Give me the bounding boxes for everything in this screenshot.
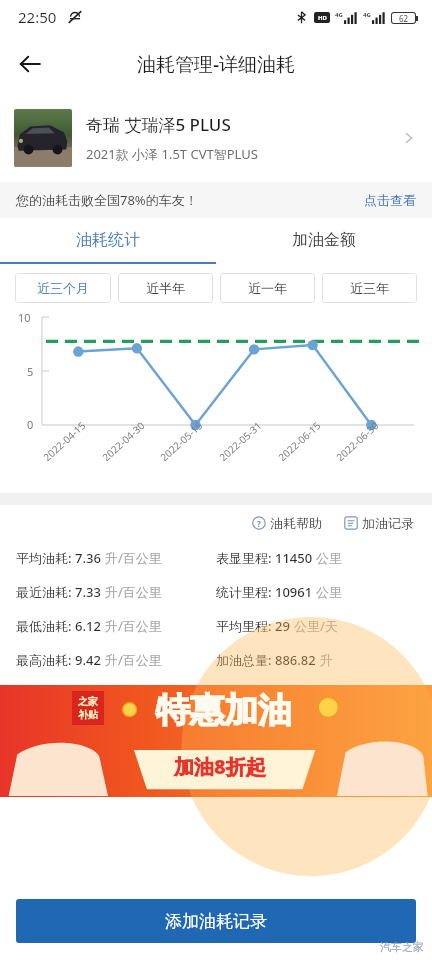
- staticText: 近三个月: [37, 280, 89, 296]
- staticText: 22:50: [18, 7, 57, 27]
- button[interactable]: Back: [8, 42, 52, 86]
- staticText: 加油总量:: [216, 651, 275, 669]
- staticText: 0: [27, 417, 34, 432]
- staticText: 4G: [335, 11, 343, 19]
- staticText: 公里/天: [294, 617, 338, 635]
- staticText: 最高油耗:: [16, 651, 75, 669]
- button[interactable]: 近半年: [118, 273, 213, 303]
- staticText: 加油记录: [362, 515, 414, 531]
- button[interactable]: 加油记录: [344, 515, 414, 531]
- staticText: 10: [18, 310, 31, 325]
- staticText: 2022-06-15: [275, 418, 324, 464]
- staticText: 油耗帮助: [270, 515, 322, 531]
- staticText: 62: [399, 13, 409, 23]
- staticText: 886.82: [275, 651, 320, 669]
- staticText: 升/百公里: [105, 583, 162, 601]
- staticText: 油耗统计: [76, 230, 140, 250]
- staticText: 2022-04-30: [99, 418, 148, 464]
- staticText: 之家: [78, 695, 98, 708]
- staticText: 最近油耗:: [16, 583, 75, 601]
- staticText: 统计里程:: [216, 583, 275, 601]
- staticText: 您的油耗击败全国78%的车友！: [16, 191, 198, 209]
- staticText: 5: [27, 364, 34, 379]
- button[interactable]: 奇瑞 艾瑞泽5 PLUS: [0, 94, 432, 182]
- staticText: 7.36: [75, 549, 105, 567]
- staticText: 添加油耗记录: [165, 911, 267, 932]
- button[interactable]: 特惠加油 广告: [0, 685, 432, 797]
- staticText: 2022-05-15: [157, 418, 206, 464]
- staticText: 油耗管理-详细油耗: [137, 51, 296, 77]
- staticText: 2022-04-15: [40, 418, 89, 464]
- staticText: 2022-06-30: [333, 418, 382, 464]
- button[interactable]: 油耗统计: [0, 218, 216, 262]
- staticText: 汽车之家: [380, 940, 424, 954]
- staticText: 表显里程:: [216, 549, 275, 567]
- staticText: 补贴: [78, 708, 98, 721]
- staticText: 最低油耗:: [16, 617, 75, 635]
- staticText: 升/百公里: [105, 617, 162, 635]
- staticText: 升/百公里: [105, 549, 162, 567]
- button[interactable]: 加油金额: [216, 218, 432, 262]
- staticText: 29: [275, 617, 294, 635]
- staticText: 平均油耗:: [16, 549, 75, 567]
- staticText: 2022-05-31: [216, 418, 265, 464]
- button[interactable]: ?: [252, 515, 322, 531]
- button[interactable]: 您的油耗击败全国78%的车友！: [0, 182, 432, 218]
- staticText: 加油8折起: [174, 753, 266, 780]
- staticText: 4G: [363, 11, 371, 19]
- staticText: 7.33: [75, 583, 105, 601]
- staticText: 近一年: [248, 280, 287, 296]
- staticText: 9.42: [75, 651, 105, 669]
- staticText: 2021款 小泽 1.5T CVT智PLUS: [86, 145, 258, 163]
- staticText: 公里: [316, 584, 342, 600]
- button[interactable]: 近三个月: [15, 273, 111, 303]
- staticText: 平均里程:: [216, 617, 275, 635]
- staticText: 6.12: [75, 617, 105, 635]
- button[interactable]: 近三年: [322, 273, 417, 303]
- staticText: 公里: [316, 550, 342, 566]
- staticText: 11450: [275, 549, 316, 567]
- staticText: 近三年: [350, 280, 389, 296]
- staticText: 特惠加油: [156, 689, 292, 732]
- staticText: 升/百公里: [105, 651, 162, 669]
- staticText: 点击查看: [364, 192, 416, 208]
- button[interactable]: 近一年: [220, 273, 315, 303]
- staticText: 升: [320, 652, 333, 668]
- staticText: 奇瑞 艾瑞泽5 PLUS: [86, 113, 231, 136]
- staticText: ?: [257, 518, 261, 529]
- staticText: 10961: [275, 583, 316, 601]
- staticText: HD: [318, 14, 327, 22]
- staticText: 近半年: [146, 280, 185, 296]
- button[interactable]: 添加油耗记录: [16, 899, 416, 943]
- staticText: 加油金额: [292, 230, 356, 250]
